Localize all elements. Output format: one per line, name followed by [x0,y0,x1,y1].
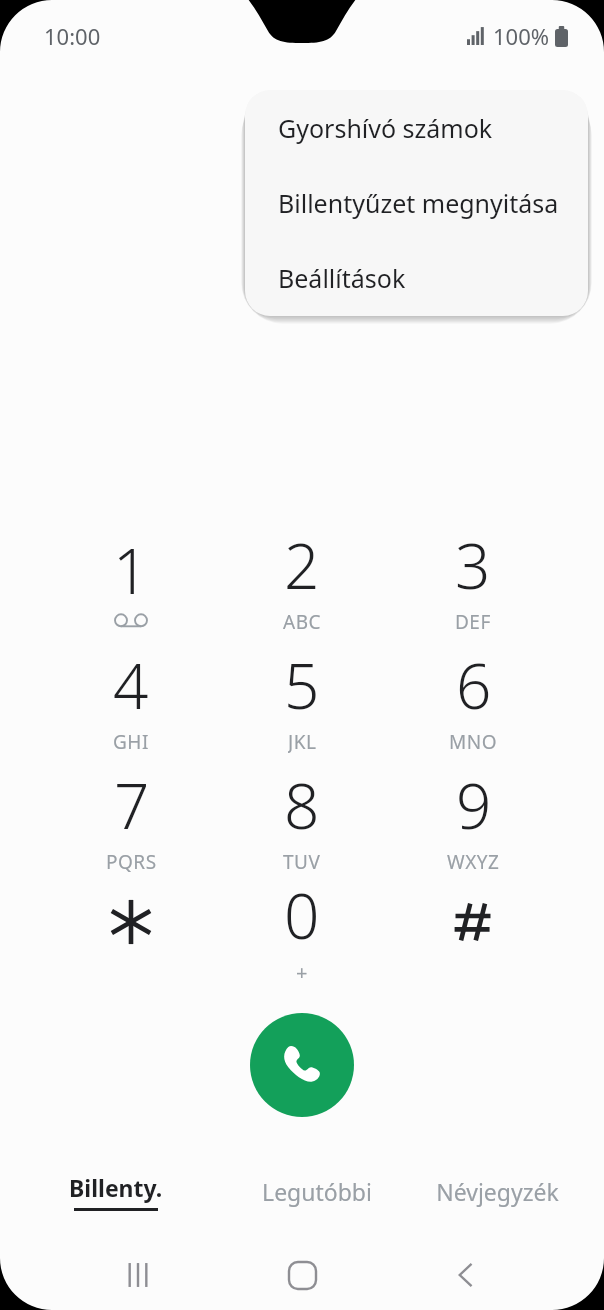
button[interactable]: 8 [227,763,377,873]
staticText: 9 [456,763,492,847]
button[interactable]: 5 [227,643,377,753]
button[interactable]: 3 [398,523,548,633]
staticText: ABC [283,609,321,633]
button[interactable]: 1 [56,523,206,633]
staticText: Legutóbbi [262,1176,372,1207]
staticText: 5 [284,643,320,727]
staticText: 0 [284,873,320,957]
staticText: GHI [113,729,149,753]
staticText: Billentyűzet megnyitása [278,186,559,220]
staticText: + [296,959,308,983]
button[interactable]: Gyorshívó számok [245,90,588,165]
button[interactable]: 2 [227,523,377,633]
staticText: PQRS [106,849,157,873]
button[interactable]: Recent apps [104,1241,172,1309]
staticText: 1 [113,528,149,612]
button[interactable]: Névjegyzék [412,1160,582,1222]
staticText: 2 [284,523,320,607]
staticText: Gyorshívó számok [278,111,493,145]
button[interactable]: 4 [56,643,206,753]
button[interactable]: Billentyűzet megnyitása [245,165,588,240]
staticText: 8 [284,763,320,847]
button[interactable]: 7 [56,763,206,873]
button[interactable]: Billenty. [46,1160,186,1222]
staticText: 7 [114,763,150,847]
staticText: 3 [455,523,491,607]
staticText: Névjegyzék [436,1176,559,1207]
button[interactable]: Legutóbbi [232,1160,402,1222]
staticText: Beállítások [278,261,406,295]
staticText: 6 [456,643,492,727]
staticText: Billenty. [69,1172,163,1203]
staticText: 100% [493,21,550,51]
button[interactable]: Star [56,867,206,977]
staticText: 4 [113,643,149,727]
staticText: DEF [455,609,491,633]
staticText: TUV [283,849,321,873]
staticText: WXYZ [447,849,500,873]
staticText: 10:00 [44,21,101,51]
button[interactable]: Home [268,1241,336,1309]
staticText: JKL [288,729,317,753]
button[interactable]: Pound [398,867,548,977]
button[interactable]: Beállítások [245,240,588,315]
button[interactable]: 6 [398,643,548,753]
button[interactable]: Call [250,1013,354,1117]
button[interactable]: 9 [398,763,548,873]
staticText: MNO [449,729,498,753]
button[interactable]: Back [432,1241,500,1309]
button[interactable]: 0 [227,873,377,983]
